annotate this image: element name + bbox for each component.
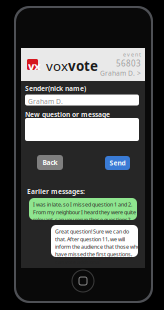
staticText: > [137, 69, 141, 78]
staticText: Graham D. [100, 69, 135, 78]
staticText: inform the audience that those who [55, 243, 140, 250]
staticText: that. After question 11, we will [55, 236, 125, 243]
staticText: New question or message [25, 110, 110, 119]
staticText: have missed the first questions, [55, 251, 132, 258]
staticText: I was in late, so I missed question 1 an… [33, 201, 132, 208]
button[interactable]: Graham D. [100, 69, 141, 78]
staticText: Graham D. [28, 97, 63, 106]
staticText: 56803 [116, 58, 141, 69]
staticText: relevant, can you rerun those questions? [33, 216, 130, 223]
staticText: Back [42, 158, 57, 167]
staticText: From my neighbour I heard they were quit… [33, 209, 136, 216]
staticText: vox [46, 57, 68, 75]
button[interactable]: Back [37, 155, 63, 170]
staticText: vote [68, 57, 98, 75]
staticText: Earlier messages: [27, 187, 85, 196]
staticText: Sender(nick name) [25, 84, 86, 93]
staticText: e v e n t [123, 51, 141, 58]
staticText: VX [28, 60, 41, 73]
staticText: Great question! Sure we can do [55, 228, 129, 235]
button[interactable]: Send [105, 156, 130, 170]
staticText: Send [109, 159, 125, 167]
